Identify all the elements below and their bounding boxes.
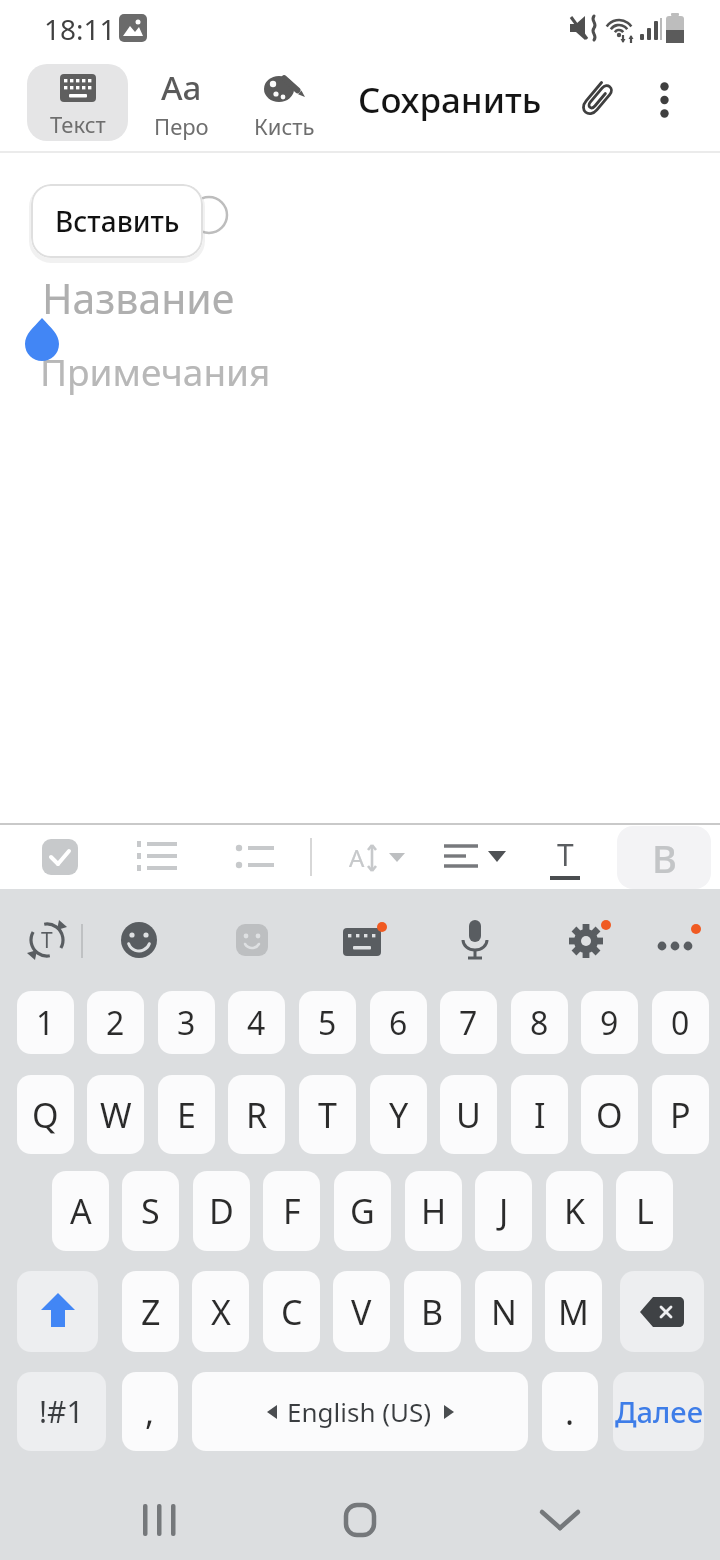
staticText: 18:11	[44, 10, 116, 48]
button[interactable]: 2	[87, 991, 144, 1054]
button[interactable]: !#1	[17, 1372, 106, 1451]
button[interactable]: Вставить	[31, 184, 203, 258]
button[interactable]	[562, 915, 616, 965]
button[interactable]: T	[299, 1075, 356, 1154]
button[interactable]	[432, 827, 518, 887]
staticText: ,	[145, 1389, 155, 1435]
button[interactable]: 5	[299, 991, 356, 1054]
button[interactable]: P	[652, 1075, 709, 1154]
button[interactable]: J	[475, 1171, 532, 1251]
button[interactable]	[636, 72, 692, 128]
button[interactable]: B	[404, 1271, 461, 1352]
button[interactable]: B	[617, 826, 711, 889]
button[interactable]: E	[158, 1075, 215, 1154]
button[interactable]: G	[334, 1171, 391, 1251]
staticText: B	[421, 1289, 444, 1335]
staticText: Вставить	[55, 202, 180, 240]
staticText: Сохранить	[358, 76, 542, 124]
staticText: 9	[600, 1001, 619, 1045]
staticText: S	[141, 1188, 160, 1234]
button[interactable]: Q	[17, 1075, 74, 1154]
button[interactable]: 3	[158, 991, 215, 1054]
staticText: L	[636, 1188, 654, 1234]
button[interactable]: N	[475, 1271, 532, 1352]
staticText: 0	[671, 1001, 690, 1045]
button[interactable]: O	[581, 1075, 638, 1154]
staticText: D	[209, 1188, 234, 1234]
button[interactable]: X	[192, 1271, 249, 1352]
button[interactable]: L	[616, 1171, 673, 1251]
staticText: F	[283, 1188, 301, 1234]
staticText: C	[281, 1289, 303, 1335]
button[interactable]: D	[193, 1171, 250, 1251]
button[interactable]	[650, 915, 706, 965]
button[interactable]: Сохранить	[352, 70, 547, 130]
button[interactable]: K	[546, 1171, 603, 1251]
button[interactable]: H	[405, 1171, 462, 1251]
button[interactable]: V	[333, 1271, 390, 1352]
staticText: R	[246, 1092, 268, 1138]
staticText: 4	[247, 1001, 266, 1045]
staticText: J	[499, 1188, 509, 1234]
button[interactable]: 4	[228, 991, 285, 1054]
button[interactable]: 6	[370, 991, 427, 1054]
staticText: English (US)	[287, 1394, 432, 1429]
button[interactable]: M	[545, 1271, 602, 1352]
button[interactable]	[227, 915, 277, 965]
button[interactable]: C	[263, 1271, 320, 1352]
button[interactable]: A	[335, 827, 419, 887]
button[interactable]	[30, 827, 90, 887]
staticText: 6	[389, 1001, 408, 1045]
button[interactable]: ,	[122, 1372, 178, 1451]
button[interactable]: 9	[581, 991, 638, 1054]
staticText: T	[41, 926, 53, 955]
staticText: Текст	[50, 109, 106, 139]
button[interactable]: 8	[511, 991, 568, 1054]
button[interactable]: T	[22, 915, 72, 965]
staticText: N	[491, 1289, 517, 1335]
button[interactable]	[225, 827, 285, 887]
button[interactable]: .	[542, 1372, 598, 1451]
button[interactable]	[127, 827, 187, 887]
button[interactable]: A	[52, 1171, 109, 1251]
staticText: X	[211, 1289, 231, 1335]
staticText: Z	[141, 1289, 161, 1335]
button[interactable]: Кисть	[238, 64, 330, 141]
staticText: Кисть	[254, 111, 315, 141]
staticText: A	[349, 841, 365, 874]
staticText: A	[70, 1188, 92, 1234]
button[interactable]: Текст	[27, 64, 128, 141]
button[interactable]: I	[511, 1075, 568, 1154]
button[interactable]: Y	[370, 1075, 427, 1154]
button[interactable]	[620, 1271, 704, 1352]
button[interactable]: Z	[122, 1271, 179, 1352]
button[interactable]: R	[228, 1075, 285, 1154]
button[interactable]: Aa	[139, 64, 223, 141]
button[interactable]	[17, 1271, 98, 1352]
staticText: 8	[530, 1001, 549, 1045]
button[interactable]	[568, 72, 624, 128]
staticText: 3	[177, 1001, 196, 1045]
button[interactable]	[450, 915, 500, 965]
staticText: E	[177, 1092, 196, 1138]
button[interactable]: W	[87, 1075, 144, 1154]
button[interactable]: U	[440, 1075, 497, 1154]
staticText: Y	[389, 1092, 409, 1138]
staticText: .	[565, 1389, 575, 1435]
button[interactable]: 1	[17, 991, 74, 1054]
button[interactable]: T	[535, 827, 595, 887]
staticText: B	[652, 832, 677, 884]
button[interactable]	[530, 1490, 590, 1550]
button[interactable]: 0	[652, 991, 709, 1054]
button[interactable]	[130, 1490, 190, 1550]
staticText: Перо	[154, 111, 209, 141]
staticText: G	[350, 1188, 375, 1234]
button[interactable]	[114, 915, 164, 965]
button[interactable]: S	[122, 1171, 179, 1251]
button[interactable]: English (US)	[192, 1372, 528, 1451]
button[interactable]: F	[263, 1171, 320, 1251]
button[interactable]: 7	[440, 991, 497, 1054]
button[interactable]	[330, 1490, 390, 1550]
button[interactable]	[338, 915, 392, 965]
button[interactable]: Далее	[613, 1372, 704, 1451]
